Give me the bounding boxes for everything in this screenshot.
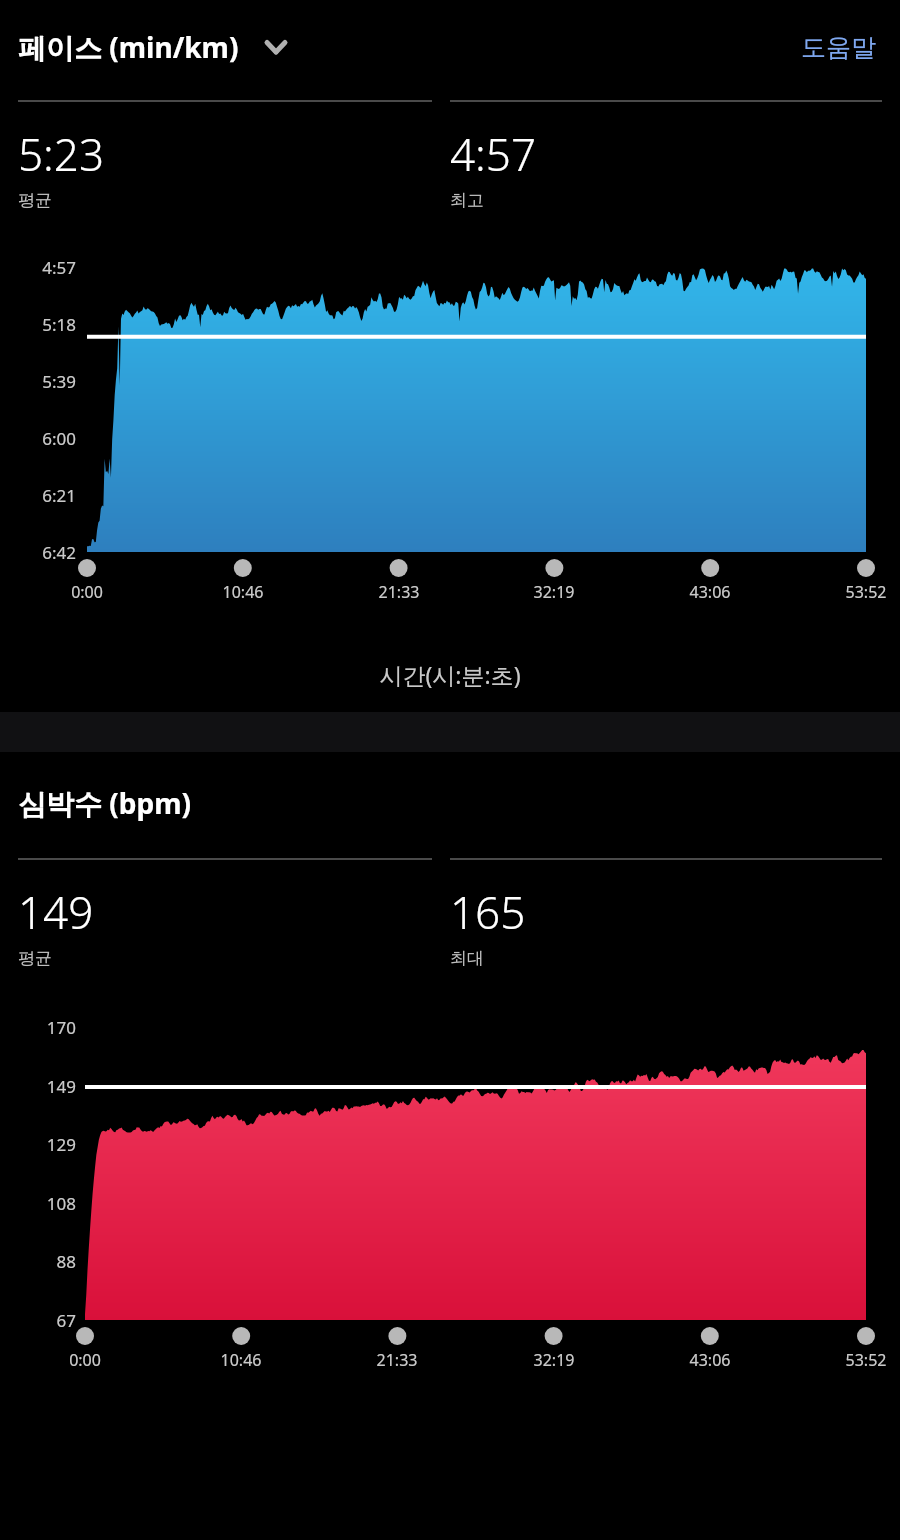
staticText: 32:19	[508, 581, 600, 603]
staticText: 0:00	[39, 1349, 131, 1371]
staticText: 88	[20, 1250, 76, 1273]
staticText: 5:18	[20, 313, 76, 336]
staticText: 최고	[450, 190, 484, 211]
button[interactable]: 페이스 (min/km)	[18, 24, 291, 70]
staticText: 0:00	[41, 581, 133, 603]
staticText: 5:39	[20, 370, 76, 393]
staticText: 페이스 (min/km)	[18, 28, 239, 66]
staticText: 21:33	[353, 581, 445, 603]
staticText: 170	[20, 1016, 76, 1039]
other: Change metric	[261, 32, 291, 62]
staticText: 149	[18, 882, 94, 942]
staticText: 21:33	[351, 1349, 443, 1371]
staticText: 평균	[18, 948, 52, 969]
staticText: 149	[20, 1075, 76, 1098]
button[interactable]: 도움말	[795, 26, 882, 69]
staticText: 6:00	[20, 427, 76, 450]
staticText: 10:46	[197, 581, 289, 603]
staticText: 4:57	[20, 256, 76, 279]
staticText: 최대	[450, 948, 484, 969]
staticText: 10:46	[195, 1349, 287, 1371]
staticText: 53:52	[820, 581, 900, 603]
button[interactable]: 심박수 (bpm)	[18, 784, 191, 822]
staticText: 도움말	[801, 32, 876, 63]
staticText: 5:23	[18, 124, 105, 184]
staticText: 시간(시:분:초)	[0, 659, 900, 690]
staticText: 67	[20, 1309, 76, 1332]
staticText: 43:06	[664, 1349, 756, 1371]
staticText: 4:57	[450, 124, 537, 184]
staticText: 32:19	[508, 1349, 600, 1371]
staticText: 53:52	[820, 1349, 900, 1371]
staticText: 6:42	[20, 541, 76, 564]
staticText: 108	[20, 1192, 76, 1215]
staticText: 6:21	[20, 484, 76, 507]
staticText: 43:06	[664, 581, 756, 603]
staticText: 평균	[18, 190, 52, 211]
staticText: 165	[450, 882, 526, 942]
staticText: 129	[20, 1133, 76, 1156]
